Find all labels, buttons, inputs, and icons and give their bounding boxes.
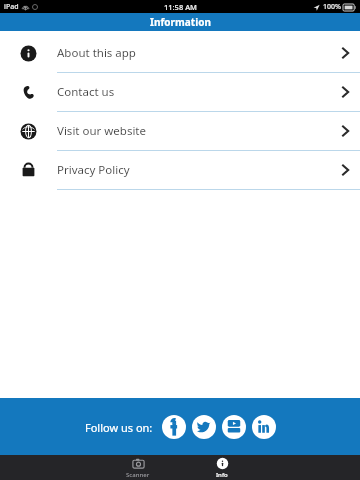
button[interactable]: Info	[194, 455, 250, 480]
staticText: Contact us	[57, 84, 330, 100]
button[interactable]: About this app	[0, 34, 360, 73]
staticText: 100%	[323, 2, 341, 12]
staticText: Information	[150, 15, 211, 29]
staticText: Info	[216, 471, 228, 479]
staticText: Follow us on:	[85, 420, 153, 435]
button[interactable]: YouTube	[222, 415, 246, 439]
button[interactable]: Contact us	[0, 73, 360, 112]
button[interactable]: Twitter	[192, 415, 216, 439]
button[interactable]: Facebook	[162, 415, 186, 439]
staticText: Scanner	[126, 471, 150, 479]
staticText: Visit our website	[57, 123, 330, 139]
button[interactable]: Scanner	[110, 455, 166, 480]
button[interactable]: LinkedIn	[252, 415, 276, 439]
staticText: Privacy Policy	[57, 162, 330, 178]
staticText: iPad	[4, 2, 19, 12]
button[interactable]: Privacy Policy	[0, 151, 360, 190]
staticText: About this app	[57, 45, 330, 61]
button[interactable]: Visit our website	[0, 112, 360, 151]
staticText: 11:58 AM	[164, 2, 197, 12]
